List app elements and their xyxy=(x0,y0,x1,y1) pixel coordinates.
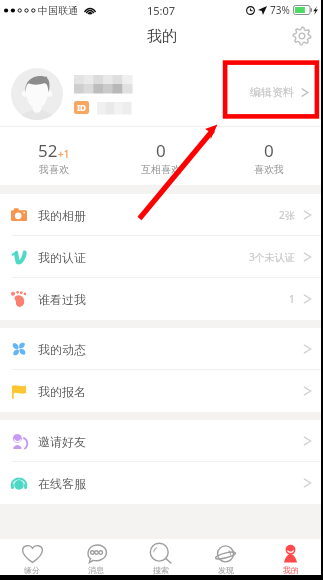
button[interactable]: 消息 xyxy=(64,539,128,575)
button[interactable]: 搜索 xyxy=(128,539,193,575)
staticText: 喜欢我 xyxy=(254,163,284,176)
button[interactable]: 邀请好友 xyxy=(0,420,323,462)
staticText: 消息 xyxy=(88,565,104,575)
button[interactable]: 缘分 xyxy=(0,539,64,575)
staticText: 73% xyxy=(270,3,290,17)
staticText: 互相喜欢 xyxy=(141,163,181,176)
button[interactable]: 52 xyxy=(0,139,107,176)
staticText: 邀请好友 xyxy=(38,434,86,449)
staticText: 搜索 xyxy=(153,565,169,575)
staticText: 我的动态 xyxy=(38,342,86,357)
button[interactable]: 编辑资料 xyxy=(250,85,309,99)
staticText: 编辑资料 xyxy=(250,85,294,99)
staticText: 我喜欢 xyxy=(39,163,69,176)
button[interactable]: 0 xyxy=(107,139,215,176)
staticText: 0 xyxy=(156,139,166,162)
staticText: 发现 xyxy=(218,565,234,575)
staticText: 中国联通 xyxy=(38,4,78,17)
button[interactable]: 我的动态 xyxy=(0,328,323,370)
button[interactable]: 0 xyxy=(215,139,323,176)
staticText: 1 xyxy=(289,292,295,306)
staticText: 我的 xyxy=(147,27,177,46)
button[interactable]: 发现 xyxy=(193,539,258,575)
staticText: 2张 xyxy=(279,208,295,222)
staticText: 缘分 xyxy=(24,565,40,575)
staticText: 52 xyxy=(38,139,58,162)
staticText: 3个未认证 xyxy=(249,250,295,264)
button[interactable]: Settings xyxy=(291,25,313,47)
staticText: ID xyxy=(77,102,86,113)
button[interactable]: 谁看过我 xyxy=(0,278,323,320)
staticText: 我的认证 xyxy=(38,250,86,265)
button[interactable]: 我的相册 xyxy=(0,194,323,236)
button[interactable]: 我的报名 xyxy=(0,370,323,412)
button[interactable]: 我的认证 xyxy=(0,236,323,278)
button[interactable]: 在线客服 xyxy=(0,462,323,504)
staticText: 0 xyxy=(264,139,274,162)
staticText: 谁看过我 xyxy=(38,292,86,307)
staticText: 我的报名 xyxy=(38,384,86,399)
staticText: 15:07 xyxy=(147,3,176,18)
staticText: 在线客服 xyxy=(38,476,86,491)
staticText: +1 xyxy=(58,147,70,161)
button[interactable]: 我的 xyxy=(258,539,323,575)
staticText: 我的 xyxy=(283,565,299,575)
staticText: 我的相册 xyxy=(38,208,86,223)
